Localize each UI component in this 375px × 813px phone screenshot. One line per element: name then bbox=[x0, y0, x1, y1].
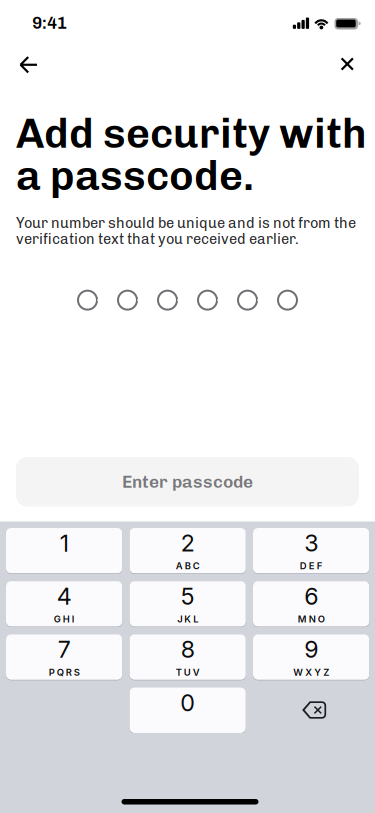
staticText: verification text that you received earl… bbox=[16, 230, 299, 248]
staticText: M N O bbox=[298, 613, 325, 625]
button[interactable]: 8 bbox=[129, 634, 246, 680]
staticText: 4 bbox=[57, 582, 72, 610]
staticText: J K L bbox=[177, 613, 198, 625]
staticText: 7 bbox=[58, 635, 71, 663]
staticText: A B C bbox=[176, 560, 200, 572]
staticText: 0 bbox=[180, 689, 195, 717]
button[interactable]: 2 bbox=[129, 528, 246, 573]
staticText: 8 bbox=[181, 635, 195, 663]
button[interactable]: Back bbox=[16, 44, 60, 82]
staticText: a passcode. bbox=[16, 151, 254, 200]
staticText: 6 bbox=[304, 582, 318, 610]
staticText: 9:41 bbox=[32, 13, 67, 33]
button[interactable]: Delete bbox=[253, 688, 369, 733]
staticText: 2 bbox=[181, 529, 195, 557]
staticText: Add security with bbox=[16, 109, 367, 158]
button[interactable]: 3 bbox=[253, 528, 369, 573]
staticText: 5 bbox=[181, 582, 195, 610]
staticText: 1 bbox=[60, 529, 69, 557]
staticText: T U V bbox=[176, 666, 200, 678]
staticText: D E F bbox=[300, 560, 323, 572]
button[interactable]: 1 bbox=[6, 528, 122, 573]
button[interactable]: 9 bbox=[253, 634, 369, 680]
staticText: G H I bbox=[54, 613, 75, 625]
staticText: Enter passcode bbox=[122, 471, 253, 492]
button[interactable]: 5 bbox=[129, 581, 246, 627]
staticText: 9 bbox=[304, 635, 318, 663]
button[interactable]: 6 bbox=[253, 581, 369, 627]
staticText: P Q R S bbox=[49, 666, 80, 678]
button[interactable]: 7 bbox=[6, 634, 122, 680]
button[interactable]: Close bbox=[315, 44, 359, 82]
staticText: Your number should be unique and is not … bbox=[16, 214, 356, 231]
staticText: 3 bbox=[304, 529, 318, 557]
button[interactable]: 4 bbox=[6, 581, 122, 627]
button[interactable]: 0 bbox=[129, 688, 246, 733]
staticText: W X Y Z bbox=[293, 666, 329, 678]
button[interactable]: Enter passcode bbox=[16, 457, 359, 506]
